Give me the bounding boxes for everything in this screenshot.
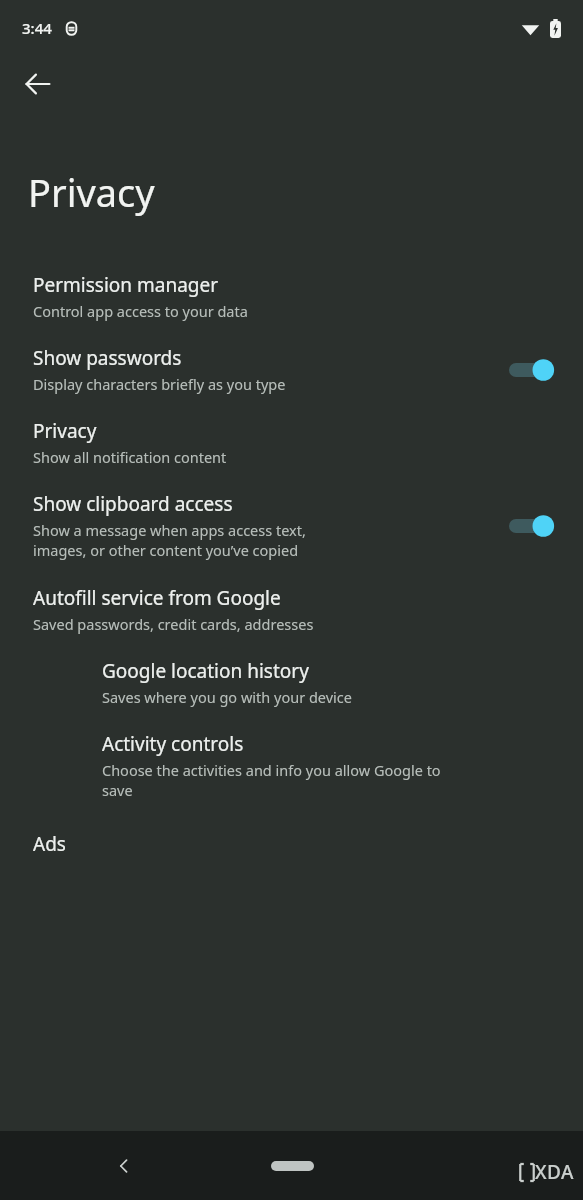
staticText: 3:44 — [22, 18, 52, 38]
button[interactable]: Permission manager — [0, 262, 583, 335]
button[interactable]: Back — [100, 1142, 148, 1190]
button[interactable]: Toggle Show clipboard access — [509, 508, 561, 544]
staticText: Saves where you go with your device — [102, 687, 352, 707]
staticText: Show clipboard access — [33, 491, 233, 517]
button[interactable]: Ads — [0, 815, 583, 855]
staticText: Show all notification content — [33, 447, 227, 467]
staticText: Control app access to your data — [33, 301, 248, 321]
button[interactable]: Privacy — [0, 408, 583, 481]
staticText: Saved passwords, credit cards, addresses — [33, 614, 314, 634]
staticText: Choose the activities and info you allow… — [102, 760, 441, 801]
staticText: Permission manager — [33, 272, 219, 298]
button[interactable]: Back — [10, 56, 66, 112]
button[interactable]: Autofill service from Google — [0, 575, 583, 648]
staticText: XDA — [535, 1159, 575, 1185]
button[interactable]: Show clipboard access — [0, 481, 583, 575]
button[interactable]: Home — [252, 1151, 332, 1181]
staticText: Activity controls — [102, 731, 244, 757]
button[interactable]: Google location history — [0, 648, 583, 721]
staticText: Privacy — [33, 418, 97, 444]
staticText: Display characters briefly as you type — [33, 374, 286, 394]
staticText: Google location history — [102, 658, 309, 684]
button[interactable]: Toggle Show passwords — [509, 352, 561, 388]
staticText: Show passwords — [33, 345, 182, 371]
staticText: Ads — [33, 831, 66, 855]
button[interactable]: Activity controls — [0, 721, 583, 815]
staticText: Show a message when apps access text, im… — [33, 520, 306, 561]
staticText: Autofill service from Google — [33, 585, 281, 611]
staticText: Privacy — [28, 166, 155, 218]
button[interactable]: Show passwords — [0, 335, 583, 408]
